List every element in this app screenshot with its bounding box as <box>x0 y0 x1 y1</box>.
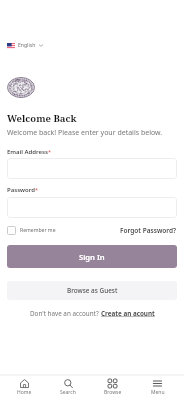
other: Logo <box>7 77 35 98</box>
button[interactable]: Browse <box>90 376 135 398</box>
other: Home <box>20 379 29 388</box>
button[interactable] <box>7 158 177 179</box>
staticText: * <box>35 186 39 194</box>
staticText: Welcome Back <box>7 112 77 125</box>
staticText: Welcome back! Please enter your details … <box>7 128 163 138</box>
staticText: * <box>48 148 52 156</box>
staticText: Email Address <box>7 148 49 156</box>
button[interactable] <box>7 197 177 218</box>
button[interactable]: Home <box>2 376 46 398</box>
staticText: Remember me <box>20 227 56 234</box>
staticText: Sign In <box>79 252 105 262</box>
button[interactable]: Forgot Password? <box>120 224 177 237</box>
other: Browse <box>108 379 117 388</box>
staticText: English <box>18 42 36 49</box>
button[interactable]: Browse as Guest <box>7 281 177 300</box>
staticText: Don't have an account? <box>30 309 101 318</box>
button[interactable]: English <box>6 40 44 51</box>
other: Menu <box>153 379 162 388</box>
staticText: Search <box>60 389 76 396</box>
staticText: Home <box>17 389 32 396</box>
staticText: Browse <box>104 389 122 396</box>
other: Search <box>64 379 73 388</box>
staticText: Password <box>7 186 36 194</box>
button[interactable]: Remember me <box>7 224 56 237</box>
button[interactable]: Create an acount <box>101 309 155 318</box>
button[interactable]: Search <box>46 376 90 398</box>
staticText: Browse as Guest <box>67 286 118 295</box>
button[interactable]: Sign In <box>7 245 177 268</box>
button[interactable]: Menu <box>135 376 180 398</box>
staticText: Menu <box>151 389 165 396</box>
